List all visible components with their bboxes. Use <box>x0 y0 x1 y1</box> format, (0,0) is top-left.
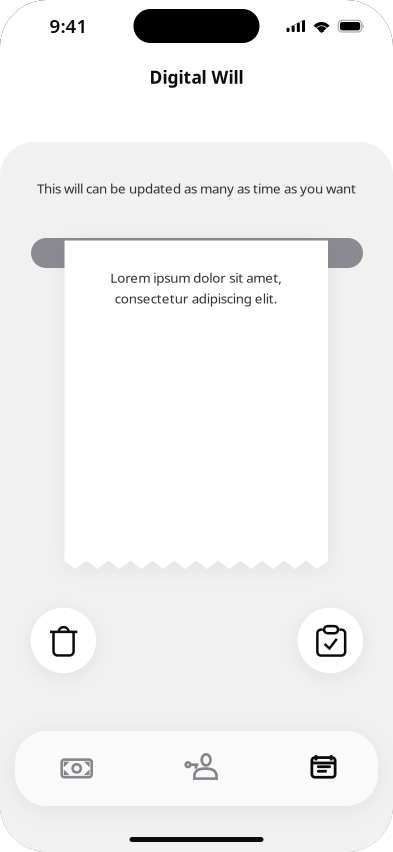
button[interactable]: Assets <box>15 731 136 806</box>
staticText: consectetur adipiscing elit. <box>115 289 278 307</box>
staticText: Digital Will <box>149 65 243 88</box>
staticText: This will can be updated as many as time… <box>37 179 356 197</box>
staticText: 9:41 <box>49 13 87 38</box>
button[interactable]: Will <box>257 731 378 806</box>
button[interactable]: Delete will <box>31 608 96 673</box>
button[interactable]: Beneficiaries <box>136 731 257 806</box>
staticText: Lorem ipsum dolor sit amet, <box>110 269 282 286</box>
button[interactable]: Confirm will <box>298 608 363 673</box>
